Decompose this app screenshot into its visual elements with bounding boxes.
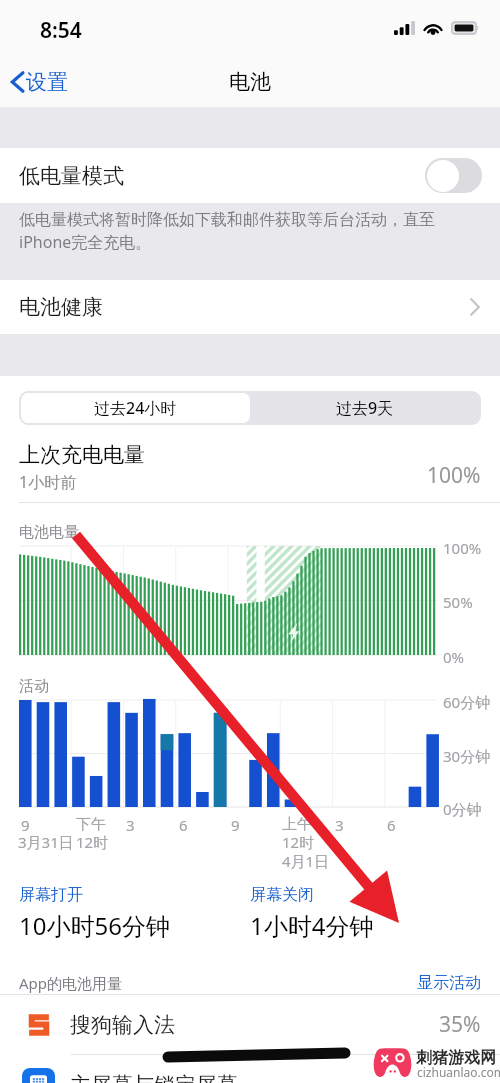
staticText: 电池 (229, 69, 271, 95)
staticText: 3 (335, 815, 344, 835)
staticText: 低电量模式 (19, 163, 124, 189)
staticText: 10小时56分钟 (19, 909, 170, 942)
staticText: 3 (126, 815, 135, 835)
staticText: 6 (387, 815, 396, 835)
staticText: 过去9天 (336, 397, 394, 419)
staticText: 屏幕关闭 (250, 885, 314, 905)
staticText: 100% (427, 461, 481, 490)
staticText: 0% (443, 647, 465, 667)
button[interactable]: 过去24小时 (21, 393, 250, 423)
staticText: 9 (21, 815, 30, 835)
staticText: 下午 (76, 815, 106, 834)
staticText: 4月1日 (282, 851, 330, 871)
staticText: 上次充电电量 (19, 442, 145, 468)
staticText: 3月31日 (18, 832, 74, 852)
staticText: 30分钟 (443, 746, 491, 766)
staticText: 活动 (19, 677, 49, 696)
button[interactable]: 搜狗输入法 (0, 995, 500, 1054)
staticText: 35% (439, 1010, 481, 1039)
staticText: 8:54 (40, 16, 82, 45)
button[interactable]: 主屏幕与锁定屏幕 (0, 1055, 500, 1083)
staticText: 上午 (282, 815, 312, 834)
staticText: 刺猪游戏网 (416, 1048, 496, 1068)
button[interactable]: 低电量模式 (0, 148, 500, 203)
staticText: 电池电量 (19, 523, 79, 542)
button[interactable]: 显示活动 (417, 973, 481, 993)
staticText: 主屏幕与锁定屏幕 (70, 1072, 238, 1083)
staticText: 60分钟 (443, 692, 491, 712)
button[interactable]: 电池健康 (0, 280, 500, 334)
staticText: 6 (179, 815, 188, 835)
staticText: 12时 (282, 832, 315, 852)
staticText: 50% (443, 592, 473, 612)
staticText: 显示活动 (417, 973, 481, 993)
button[interactable]: 屏幕关闭 (250, 885, 481, 942)
staticText: cizhuanlao.com (417, 1064, 500, 1080)
staticText: 屏幕打开 (19, 885, 83, 905)
staticText: 过去24小时 (94, 397, 177, 419)
button[interactable]: 低电量模式开关 (425, 158, 482, 193)
staticText: 12时 (76, 832, 109, 852)
staticText: 9 (231, 815, 240, 835)
staticText: 搜狗输入法 (70, 1012, 175, 1038)
staticText: 100% (443, 538, 482, 558)
staticText: 设置 (26, 69, 68, 95)
staticText: 1小时前 (19, 471, 77, 493)
button[interactable]: 屏幕打开 (19, 885, 250, 942)
staticText: 电池健康 (19, 294, 103, 320)
staticText: 低电量模式将暂时降低如下载和邮件获取等后台活动，直至 iPhone完全充电。 (19, 210, 435, 253)
staticText: App的电池用量 (19, 973, 123, 993)
button[interactable]: 过去9天 (250, 393, 479, 423)
staticText: 0分钟 (443, 799, 482, 819)
button[interactable]: 设置 (0, 63, 82, 101)
staticText: 1小时4分钟 (250, 909, 374, 942)
